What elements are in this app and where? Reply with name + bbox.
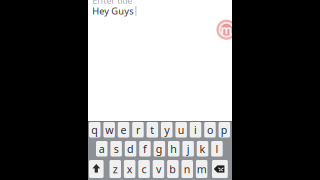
staticText: e <box>120 123 126 137</box>
button[interactable]: q <box>89 122 100 137</box>
staticText: k <box>200 142 206 156</box>
button[interactable]: u <box>175 122 187 137</box>
staticText: u <box>178 123 185 137</box>
button[interactable]: v <box>153 160 164 178</box>
staticText: g <box>156 142 163 156</box>
button[interactable]: Shift <box>89 160 104 178</box>
button[interactable]: g <box>154 141 165 156</box>
staticText: q <box>91 123 98 137</box>
button[interactable]: r <box>132 122 144 137</box>
button[interactable]: j <box>182 141 194 156</box>
staticText: d <box>127 142 134 156</box>
button[interactable]: s <box>110 141 122 156</box>
button[interactable]: Backspace <box>212 160 228 178</box>
staticText: v <box>156 162 161 176</box>
staticText: x <box>127 162 133 176</box>
staticText: f <box>143 142 147 156</box>
staticText: l <box>215 142 218 156</box>
staticText: t <box>150 123 154 137</box>
button[interactable]: h <box>168 141 179 156</box>
button[interactable]: k <box>197 141 208 156</box>
button[interactable]: i <box>190 122 201 137</box>
staticText: n <box>184 162 191 176</box>
staticText: c <box>142 162 147 176</box>
button[interactable]: l <box>211 141 223 156</box>
staticText: Enter title <box>92 0 132 6</box>
button[interactable]: n <box>181 160 193 178</box>
button[interactable]: e <box>118 122 129 137</box>
button[interactable]: x <box>124 160 135 178</box>
staticText: s <box>114 142 119 156</box>
button[interactable]: c <box>138 160 150 178</box>
staticText: j <box>187 142 190 156</box>
staticText: i <box>194 123 197 137</box>
staticText: o <box>207 123 213 137</box>
button[interactable]: d <box>125 141 136 156</box>
staticText: r <box>136 123 140 137</box>
staticText: a <box>99 142 105 156</box>
button[interactable]: m <box>196 160 207 178</box>
staticText: m <box>197 162 207 176</box>
button[interactable]: o <box>204 122 216 137</box>
button[interactable]: w <box>103 122 115 137</box>
staticText: p <box>221 123 228 137</box>
staticText: h <box>170 142 177 156</box>
staticText: b <box>169 162 176 176</box>
button[interactable]: f <box>139 141 151 156</box>
button[interactable]: p <box>219 122 230 137</box>
button[interactable]: y <box>161 122 172 137</box>
button[interactable]: b <box>167 160 179 178</box>
staticText: z <box>113 162 118 176</box>
button[interactable]: t <box>147 122 158 137</box>
staticText: y <box>164 123 169 137</box>
staticText: w <box>105 123 113 137</box>
button[interactable]: a <box>96 141 107 156</box>
staticText: Hey Guys <box>92 5 133 17</box>
button[interactable]: z <box>109 160 121 178</box>
staticText: m <box>220 22 232 38</box>
